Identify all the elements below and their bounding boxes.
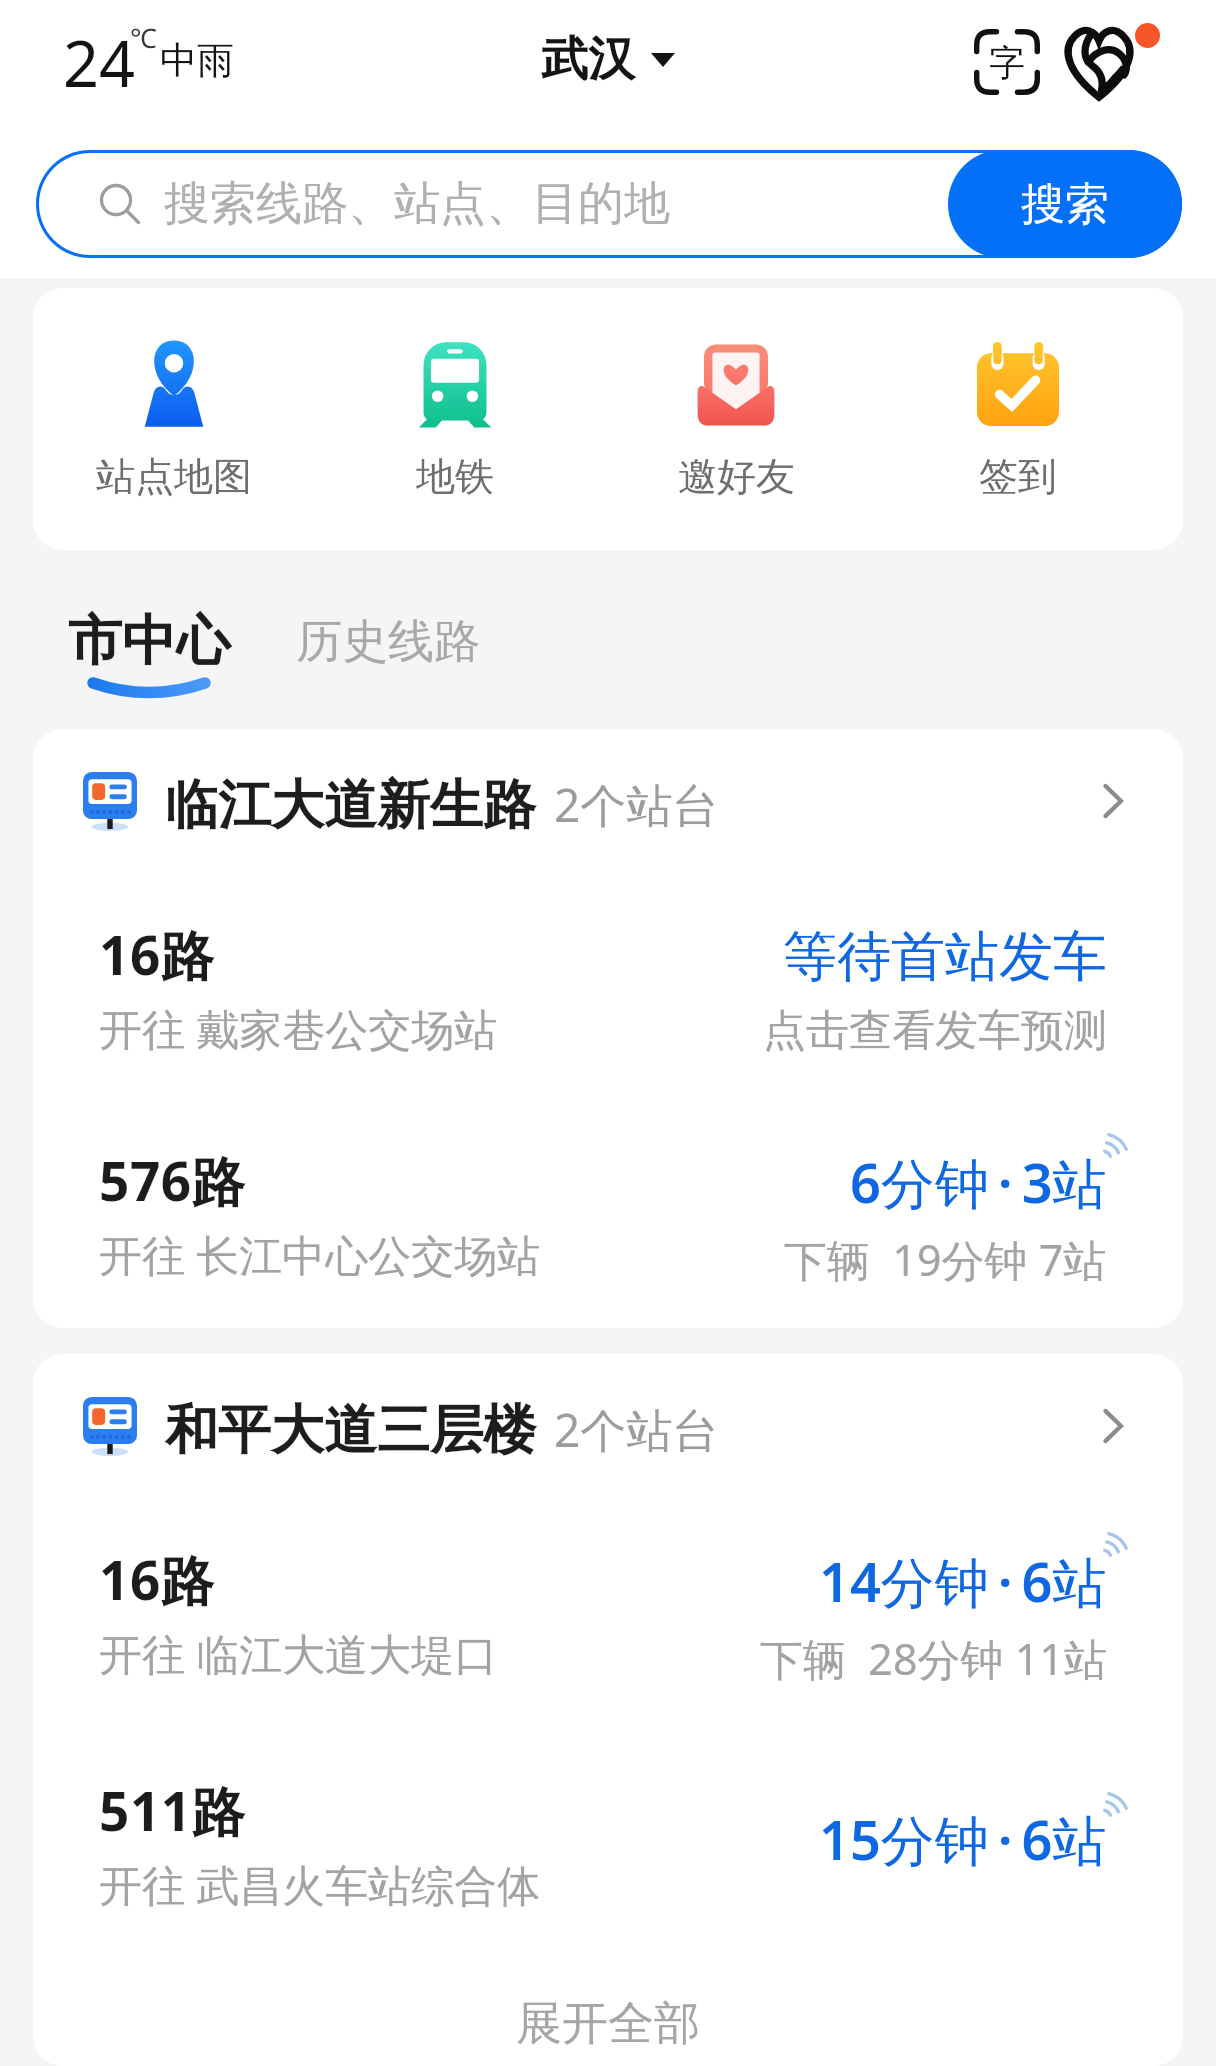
- button[interactable]: 和平大道三层楼: [33, 1354, 1183, 1502]
- staticText: 576路: [99, 1144, 246, 1216]
- staticText: 开往 临江大道大堤口: [99, 1624, 498, 1683]
- staticText: 中雨: [160, 37, 234, 84]
- staticText: 站点地图: [96, 452, 252, 501]
- button[interactable]: 站点地图: [33, 328, 314, 511]
- staticText: 武汉: [541, 30, 635, 89]
- staticText: 2个站台: [554, 1398, 719, 1461]
- button[interactable]: 邀好友: [595, 328, 877, 511]
- staticText: 展开全部: [516, 1995, 700, 2053]
- button[interactable]: 展开全部: [33, 1914, 1183, 2066]
- button[interactable]: 搜索线路、站点、目的地: [36, 150, 1182, 258]
- staticText: 开往 戴家巷公交场站: [99, 999, 498, 1058]
- staticText: 下辆 28分钟 11站: [760, 1629, 1107, 1688]
- button[interactable]: 搜索: [948, 150, 1182, 258]
- staticText: 2个站台: [554, 773, 719, 836]
- button[interactable]: 576路: [33, 1058, 1183, 1289]
- staticText: ℃: [130, 19, 157, 56]
- button[interactable]: 好友互助: [1059, 10, 1163, 114]
- staticText: 下辆 19分钟 7站: [784, 1230, 1107, 1289]
- button[interactable]: 市中心: [68, 603, 230, 701]
- staticText: 开往 武昌火车站综合体: [99, 1855, 541, 1914]
- staticText: 开往 长江中心公交场站: [99, 1225, 541, 1284]
- button[interactable]: 临江大道新生路: [33, 729, 1183, 877]
- staticText: 字: [989, 40, 1025, 85]
- button[interactable]: 16路: [33, 1502, 1183, 1688]
- staticText: 临江大道新生路: [165, 772, 536, 839]
- staticText: 14分钟 · 6站: [819, 1544, 1107, 1616]
- staticText: 511路: [99, 1774, 246, 1846]
- button[interactable]: 24: [63, 14, 237, 100]
- button[interactable]: 签到: [877, 328, 1159, 511]
- button[interactable]: 511路: [33, 1688, 1183, 1914]
- staticText: 等待首站发车: [783, 923, 1107, 991]
- staticText: 16路: [99, 1543, 215, 1615]
- staticText: 签到: [979, 452, 1057, 501]
- staticText: 历史线路: [296, 613, 480, 671]
- staticText: 24: [63, 20, 136, 106]
- staticText: 点击查看发车预测: [763, 1004, 1107, 1058]
- button[interactable]: 16路: [33, 877, 1183, 1058]
- staticText: 市中心: [68, 607, 230, 675]
- staticText: 搜索线路、站点、目的地: [164, 175, 670, 233]
- button[interactable]: 历史线路: [296, 603, 480, 671]
- staticText: 地铁: [416, 452, 494, 501]
- staticText: 15分钟 · 6站: [819, 1802, 1107, 1876]
- button[interactable]: 武汉: [541, 30, 675, 89]
- staticText: 16路: [99, 918, 215, 990]
- button[interactable]: 地铁: [314, 328, 595, 511]
- staticText: 6分钟 · 3站: [850, 1145, 1107, 1217]
- staticText: 邀好友: [678, 452, 795, 501]
- staticText: 搜索: [1021, 177, 1109, 232]
- staticText: 和平大道三层楼: [165, 1397, 536, 1464]
- button[interactable]: 扫一扫识别文字: [955, 10, 1059, 114]
